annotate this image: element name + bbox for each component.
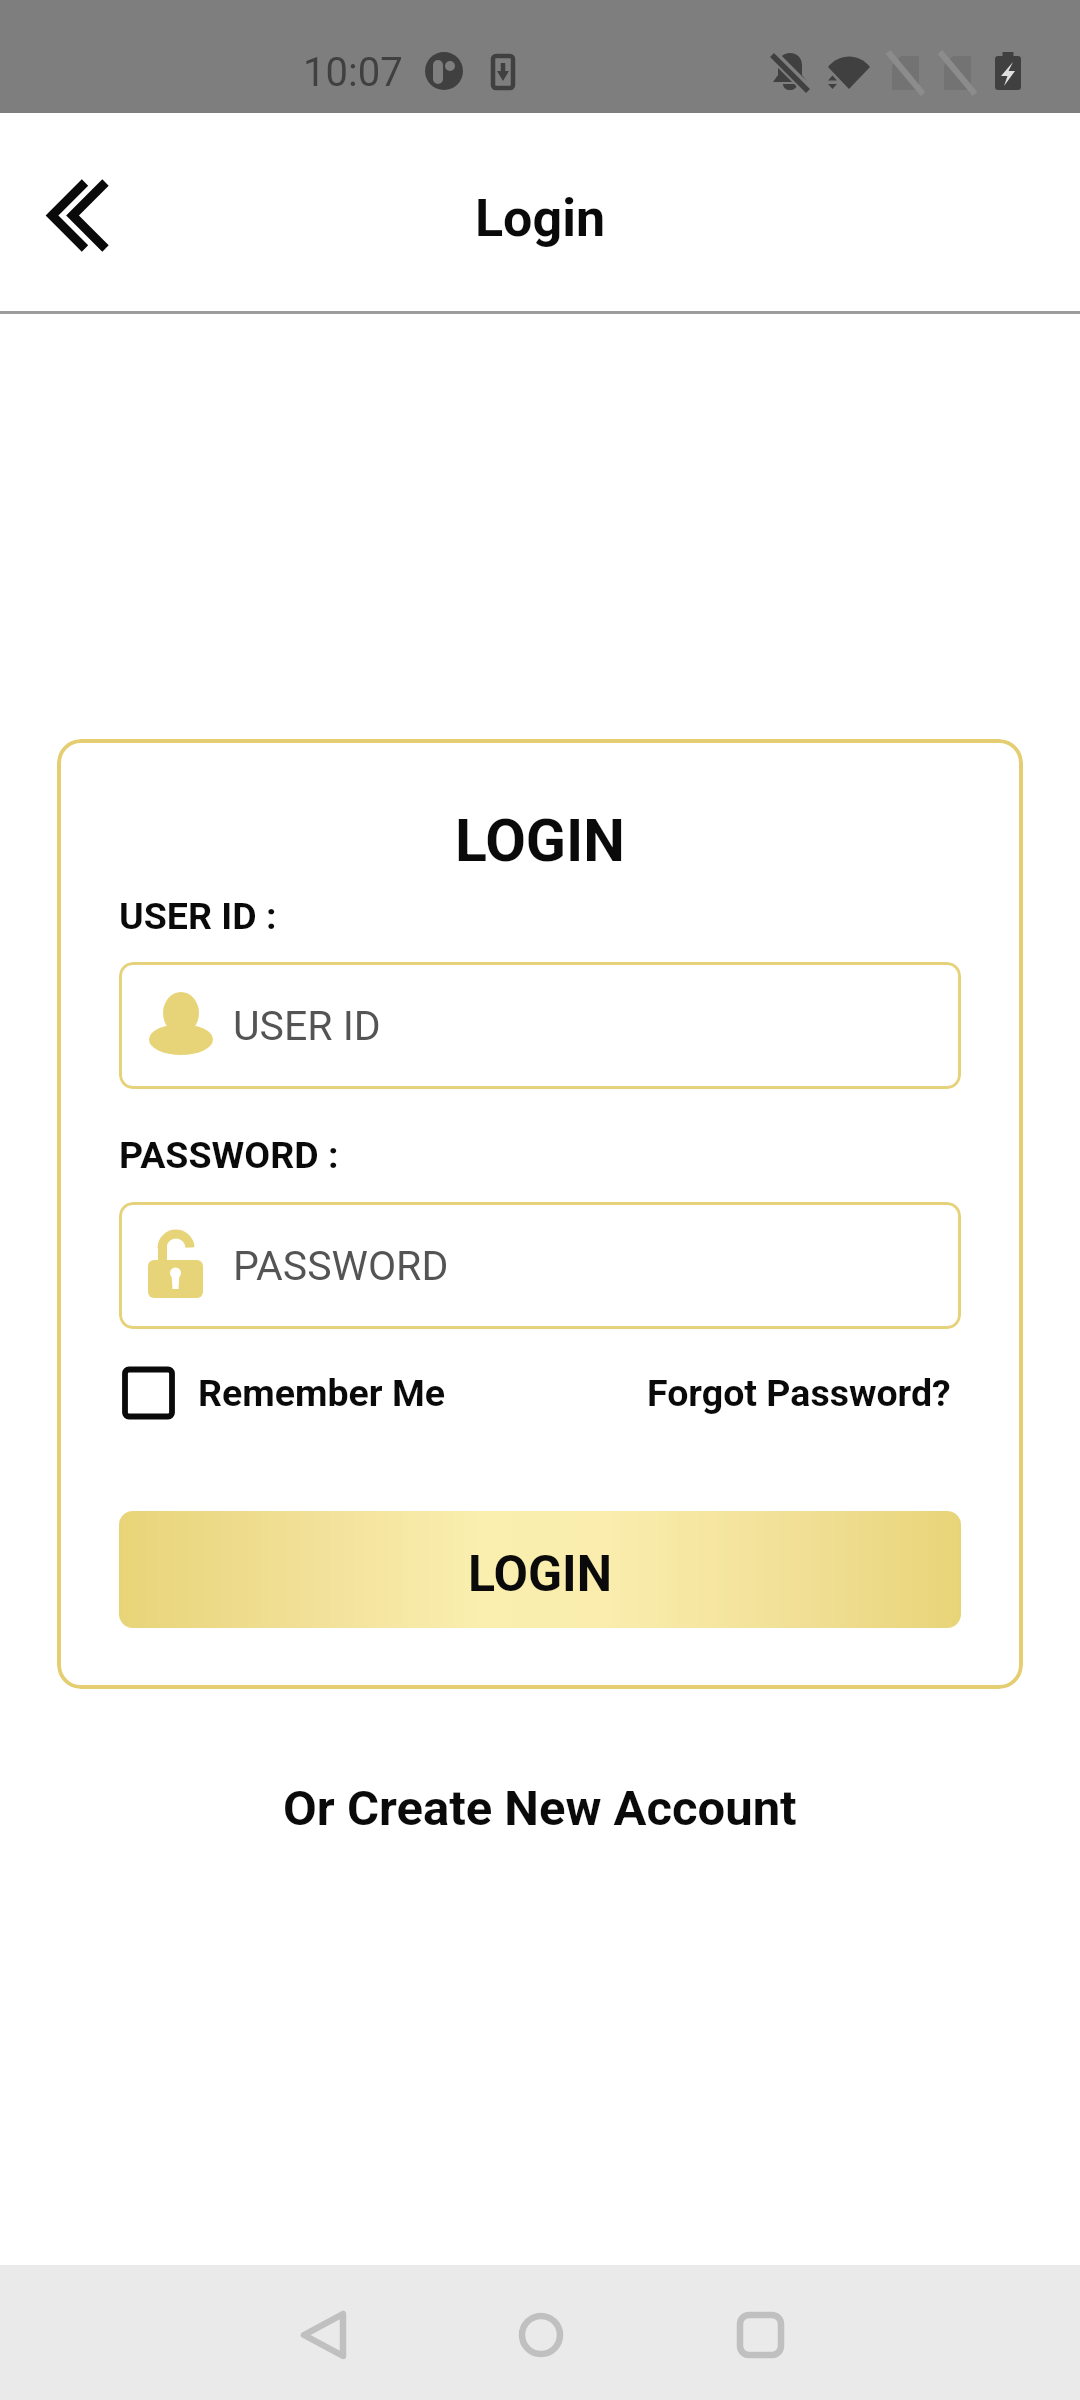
- staticText: PASSWORD: [233, 1242, 449, 1290]
- button[interactable]: Back: [278, 2286, 378, 2386]
- button[interactable]: Or Create New Account: [283, 1771, 797, 1845]
- button[interactable]: LOGIN: [119, 1511, 961, 1628]
- staticText: Remember Me: [198, 1371, 445, 1415]
- staticText: LOGIN: [468, 1545, 612, 1604]
- staticText: PASSWORD :: [119, 1133, 339, 1177]
- button[interactable]: Remember Me: [119, 1356, 445, 1430]
- button[interactable]: PASSWORD: [119, 1202, 961, 1329]
- staticText: Login: [0, 188, 1080, 249]
- button[interactable]: USER ID: [119, 962, 961, 1089]
- button[interactable]: Home: [493, 2286, 593, 2386]
- staticText: LOGIN: [57, 806, 1023, 875]
- button[interactable]: Back: [27, 162, 137, 270]
- staticText: Forgot Password?: [647, 1371, 951, 1415]
- staticText: USER ID: [233, 1002, 381, 1050]
- staticText: 10:07: [303, 49, 403, 96]
- staticText: Or Create New Account: [283, 1780, 797, 1837]
- button[interactable]: Recents: [713, 2286, 813, 2386]
- button[interactable]: Forgot Password?: [647, 1356, 951, 1430]
- staticText: USER ID :: [119, 894, 277, 938]
